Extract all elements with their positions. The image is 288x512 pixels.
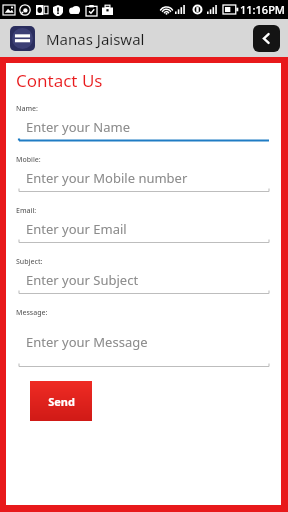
staticText: Enter your Message (26, 333, 148, 351)
button[interactable]: Enter your Mobile number (16, 165, 271, 195)
button[interactable]: Enter your Name (16, 114, 271, 144)
staticText: Manas Jaiswal (46, 29, 145, 49)
staticText: Enter your Mobile number (26, 169, 188, 187)
button[interactable]: Enter your Subject (16, 267, 271, 297)
button[interactable]: Back (253, 25, 280, 52)
staticText: Mobile: (16, 155, 41, 165)
staticText: Name: (16, 104, 38, 114)
staticText: Subject: (16, 257, 43, 267)
staticText: Message: (16, 308, 48, 318)
staticText: Enter your Subject (26, 271, 139, 289)
staticText: Enter your Name (26, 118, 130, 136)
staticText: Send (48, 394, 75, 409)
button[interactable]: Enter your Email (16, 216, 271, 246)
staticText: Contact Us (16, 69, 103, 92)
button[interactable]: Enter your Message (16, 318, 271, 370)
button[interactable]: App logo (10, 26, 35, 51)
staticText: Email: (16, 206, 37, 216)
staticText: Enter your Email (26, 220, 127, 238)
button[interactable]: Send (30, 381, 92, 421)
staticText: 11:16PM (240, 2, 285, 17)
